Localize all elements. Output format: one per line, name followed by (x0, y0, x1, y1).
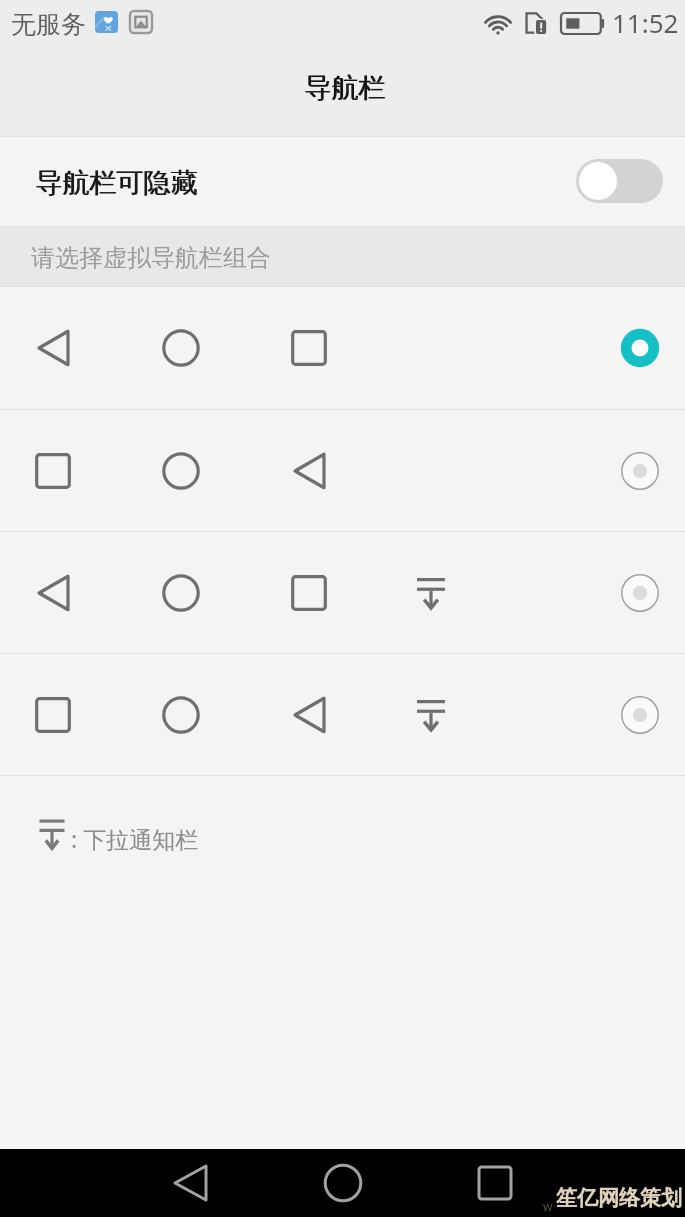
button[interactable]: Recent Home Back layout (0, 410, 685, 531)
staticText: 请选择虚拟导航栏组合 (31, 243, 271, 273)
staticText: 11:52 (612, 5, 679, 40)
button[interactable]: Back Home Recent Notify layout (0, 532, 685, 653)
button[interactable]: 导航栏可隐藏 (0, 137, 685, 226)
staticText: 无服务 (11, 9, 86, 40)
button[interactable]: Back Home Recent layout (0, 287, 685, 409)
button[interactable]: Back (156, 1149, 224, 1217)
staticText: 导航栏 (305, 71, 386, 105)
staticText: 笙亿网络策划 (556, 1185, 682, 1211)
staticText: 导航栏 (304, 71, 385, 105)
button[interactable]: Recent apps (461, 1149, 529, 1217)
staticText: 导航栏可隐藏 (36, 166, 198, 200)
staticText: w (543, 1198, 553, 1214)
staticText: 导航栏可隐藏 (35, 166, 197, 200)
button[interactable]: Toggle navigation bar hide (576, 159, 663, 203)
button[interactable]: Recent Home Back Notify layout (0, 654, 685, 775)
staticText: : 下拉通知栏 (71, 823, 199, 854)
button[interactable]: Home (309, 1149, 377, 1217)
